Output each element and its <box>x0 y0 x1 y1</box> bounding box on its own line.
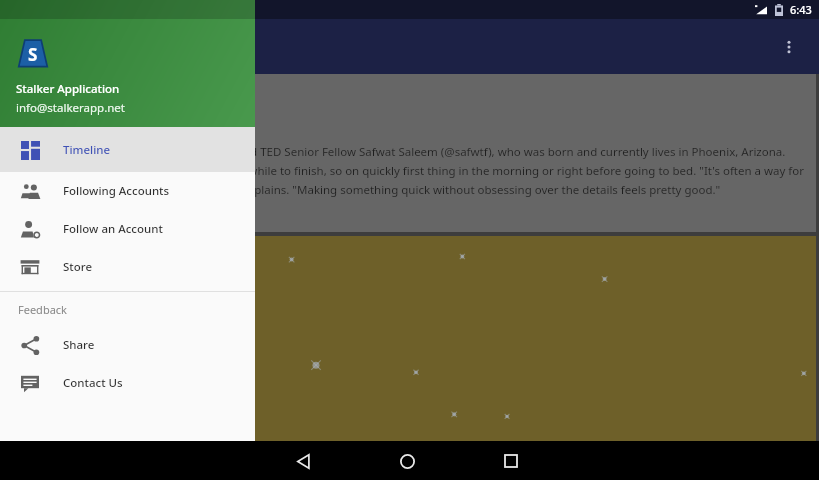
staticText: Follow an Account <box>63 221 163 237</box>
staticText: ut work at all," says graphic designer, … <box>3 144 816 197</box>
button[interactable] <box>3 236 816 441</box>
staticText: Store <box>63 259 92 275</box>
staticText: Stalker Application <box>16 81 120 97</box>
staticText: S <box>28 43 38 66</box>
button[interactable]: ut work at all," says graphic designer, … <box>3 74 816 232</box>
button[interactable]: Recent apps <box>494 444 528 478</box>
button[interactable]: Follow an Account <box>0 210 255 248</box>
button[interactable]: Contact Us <box>0 364 255 402</box>
button[interactable]: Store <box>0 248 255 286</box>
button[interactable]: Following Accounts <box>0 172 255 210</box>
button[interactable]: Timeline <box>0 127 255 172</box>
button[interactable]: Home <box>390 444 424 478</box>
button[interactable]: Back <box>286 444 320 478</box>
staticText: Following Accounts <box>63 183 170 199</box>
staticText: Feedback <box>18 302 67 317</box>
staticText: 6:43 <box>790 2 812 17</box>
staticText: Timeline <box>63 142 111 158</box>
staticText: info@stalkerapp.net <box>16 100 125 116</box>
button[interactable]: Share <box>0 326 255 364</box>
staticText: Share <box>63 337 95 353</box>
button[interactable]: More options <box>769 27 809 67</box>
staticText: Contact Us <box>63 375 123 391</box>
